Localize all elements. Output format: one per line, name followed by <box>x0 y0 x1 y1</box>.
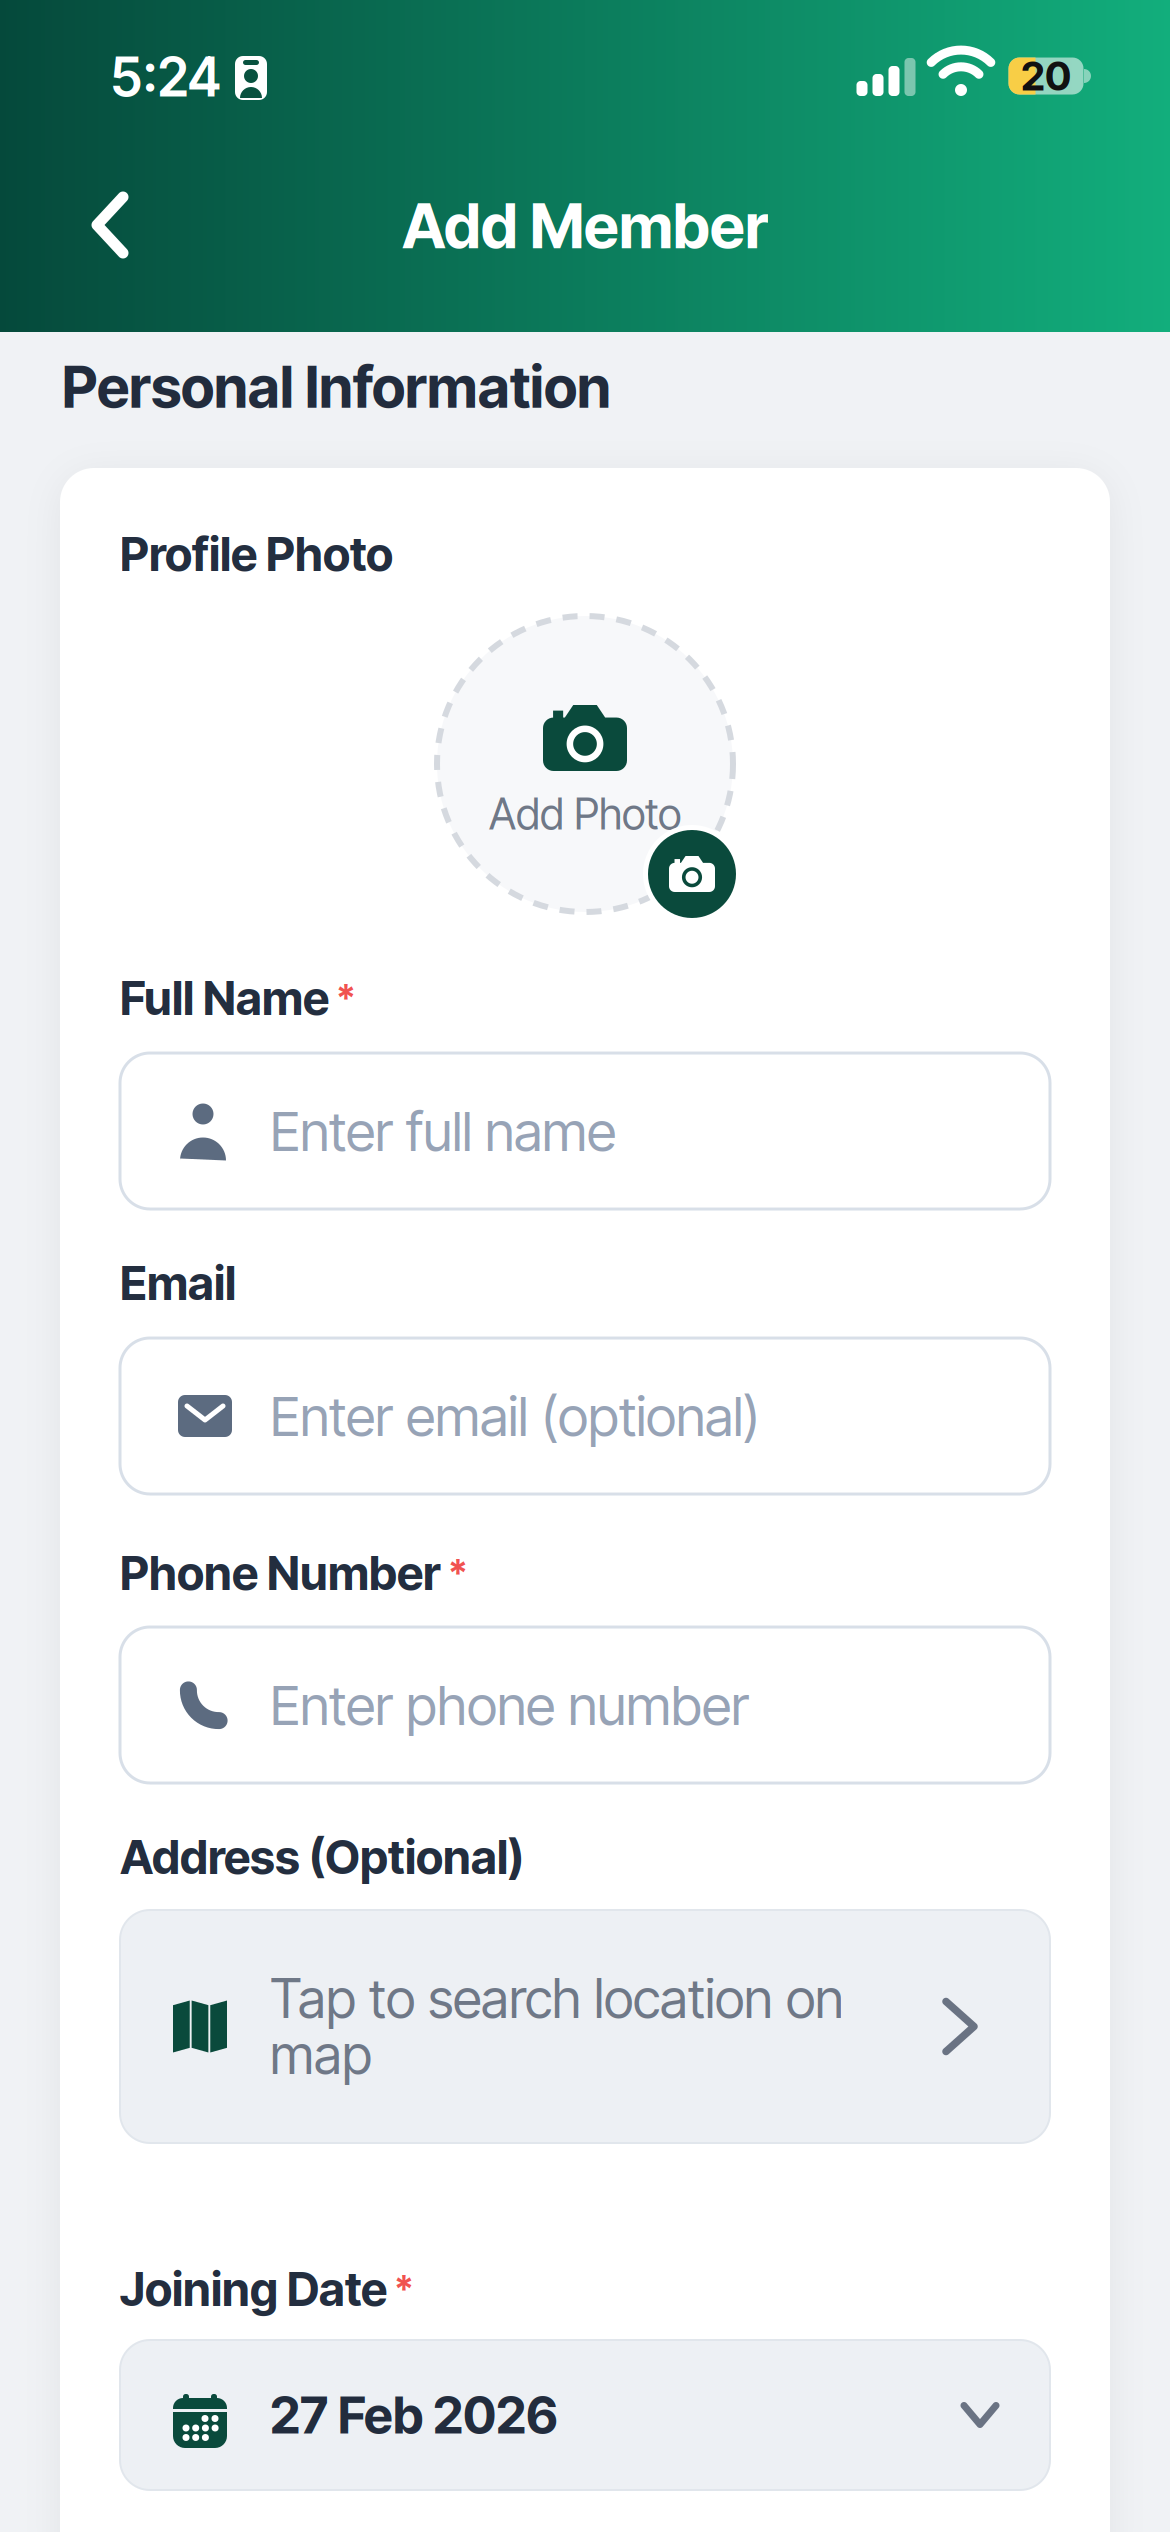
button[interactable]: Enter phone number <box>120 1627 1050 1783</box>
staticText: 27 Feb 2026 <box>270 2385 558 2445</box>
staticText: Email <box>120 1255 236 1311</box>
button[interactable]: Enter full name <box>120 1053 1050 1209</box>
staticText: * <box>394 2267 414 2311</box>
button[interactable]: Change Photo <box>643 825 741 923</box>
staticText: 20 <box>1021 52 1071 100</box>
staticText: Personal Information <box>62 353 611 421</box>
staticText: Enter phone number <box>270 1673 749 1737</box>
staticText: map <box>270 2023 372 2086</box>
staticText: Phone Number <box>120 1545 441 1601</box>
staticText: Add Member <box>402 190 768 262</box>
button[interactable]: Add Photo <box>437 616 733 912</box>
button[interactable]: Tap to search location on <box>120 1910 1050 2143</box>
staticText: Add Photo <box>489 789 681 839</box>
staticText: Full Name <box>120 970 329 1026</box>
button[interactable]: Enter email (optional) <box>120 1338 1050 1494</box>
staticText: * <box>448 1551 468 1595</box>
staticText: Joining Date <box>120 2261 387 2317</box>
staticText: * <box>336 976 356 1020</box>
staticText: Enter full name <box>270 1099 616 1163</box>
staticText: Address (Optional) <box>120 1829 524 1885</box>
button[interactable]: 27 Feb 2026 <box>120 2340 1050 2490</box>
staticText: 5:24 <box>110 45 221 108</box>
staticText: Enter email (optional) <box>270 1384 760 1448</box>
button[interactable]: Back <box>92 193 128 257</box>
staticText: Profile Photo <box>120 526 393 582</box>
staticText: Tap to search location on <box>270 1967 844 2030</box>
